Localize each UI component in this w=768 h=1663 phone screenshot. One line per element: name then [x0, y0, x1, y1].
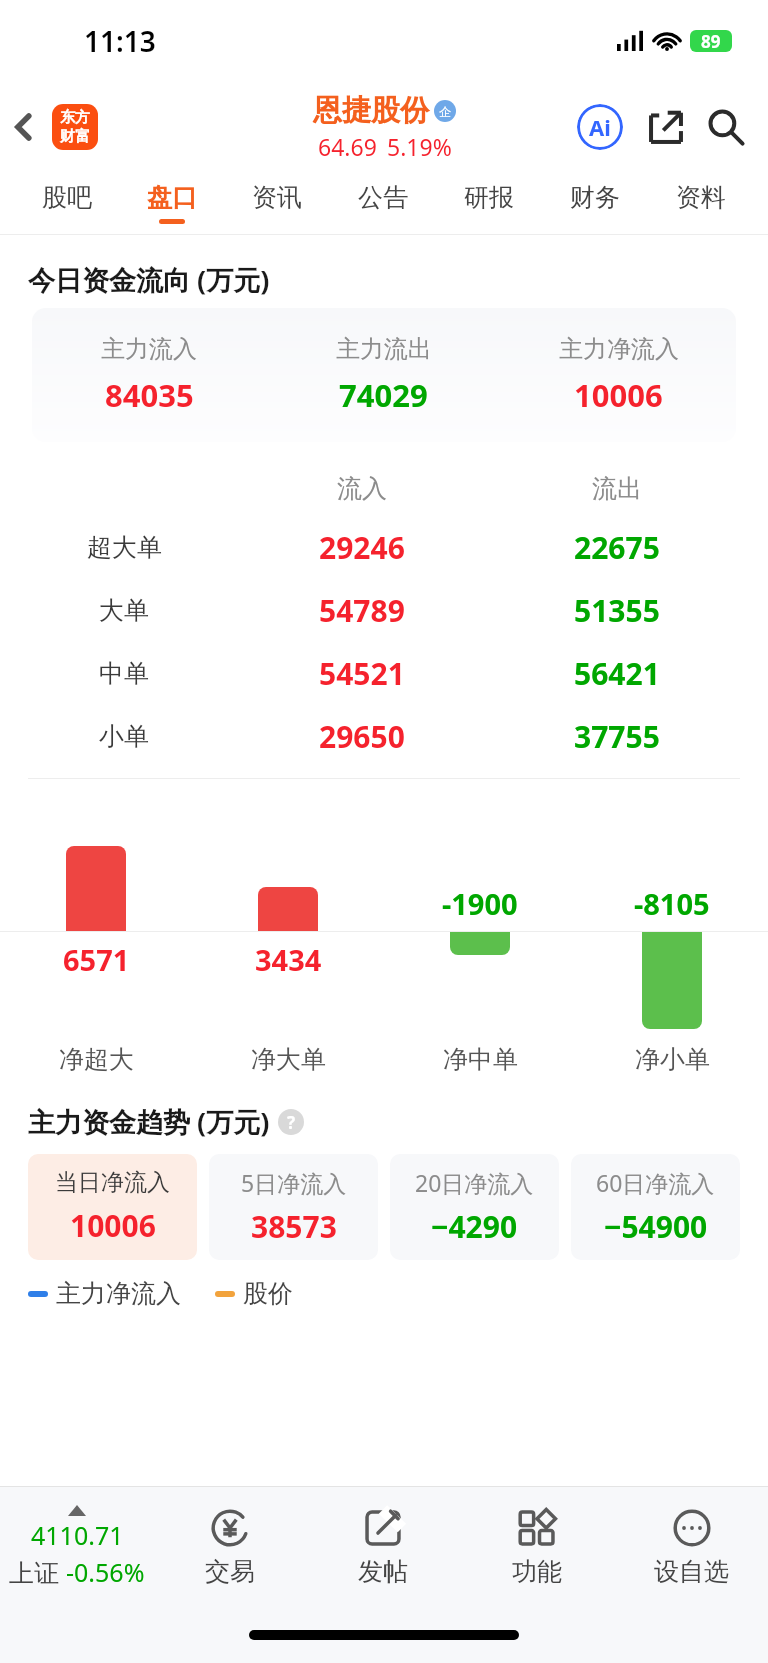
staticText: 净超大 — [59, 1044, 134, 1075]
staticText: 流出 — [592, 473, 642, 504]
staticText: 5日净流入 — [241, 1167, 347, 1198]
button[interactable]: Share — [638, 99, 694, 155]
button[interactable]: 交易 — [153, 1487, 306, 1607]
staticText: 主力流入 — [101, 334, 197, 364]
staticText: 设自选 — [654, 1556, 729, 1587]
staticText: −54900 — [604, 1206, 708, 1247]
staticText: −4290 — [431, 1206, 518, 1247]
button[interactable]: 净中单 — [384, 1029, 576, 1089]
staticText: ? — [287, 1111, 296, 1134]
staticText: 今日资金流向 (万元) — [28, 261, 270, 298]
staticText: 超大单 — [87, 532, 162, 563]
button[interactable]: 5日净流入 — [209, 1154, 378, 1260]
button[interactable]: 净小单 — [576, 1029, 768, 1089]
button[interactable]: 60日净流入 — [571, 1154, 740, 1260]
staticText: 财务 — [570, 182, 620, 213]
button[interactable]: East Money — [52, 104, 98, 150]
button[interactable]: 20日净流入 — [390, 1154, 559, 1260]
staticText: 净中单 — [443, 1044, 518, 1075]
staticText: 5.19% — [387, 131, 452, 162]
button[interactable]: 股吧 — [14, 172, 119, 234]
staticText: -8105 — [634, 884, 710, 923]
staticText: 51355 — [574, 590, 660, 631]
staticText: 29650 — [319, 716, 405, 757]
button[interactable]: 财务 — [542, 172, 648, 234]
staticText: 公告 — [358, 182, 408, 213]
staticText: 38573 — [251, 1206, 337, 1247]
staticText: 功能 — [512, 1556, 562, 1587]
button[interactable]: 功能 — [460, 1487, 614, 1607]
button[interactable]: 当日净流入 — [28, 1154, 197, 1260]
staticText: 20日净流入 — [415, 1167, 534, 1198]
staticText: 10006 — [574, 374, 663, 416]
button[interactable]: 设自选 — [614, 1487, 768, 1607]
staticText: 84035 — [105, 374, 194, 416]
staticText: 研报 — [464, 182, 514, 213]
button[interactable]: 主力流入 — [32, 308, 736, 442]
staticText: 财富 — [60, 127, 90, 146]
button[interactable]: Search — [698, 99, 754, 155]
staticText: 净小单 — [635, 1044, 710, 1075]
button[interactable]: 资讯 — [224, 172, 330, 234]
staticText: -0.56% — [66, 1555, 145, 1589]
staticText: 东方 — [60, 108, 90, 127]
staticText: 60日净流入 — [596, 1167, 715, 1198]
staticText: 74029 — [339, 374, 428, 416]
button[interactable]: 净大单 — [192, 1029, 384, 1089]
staticText: 上证 — [9, 1555, 66, 1589]
staticText: 37755 — [574, 716, 660, 757]
staticText: 当日净流入 — [55, 1168, 170, 1197]
staticText: 主力净流入 — [56, 1278, 181, 1309]
staticText: 11:13 — [84, 22, 156, 60]
button[interactable]: AI assistant — [572, 99, 628, 155]
staticText: 盘口 — [147, 182, 197, 213]
staticText: 4110.71 — [31, 1518, 124, 1552]
staticText: Ai — [589, 112, 611, 142]
button[interactable]: Back — [0, 103, 48, 151]
staticText: 22675 — [574, 527, 660, 568]
staticText: 主力资金趋势 (万元) — [28, 1103, 270, 1140]
staticText: 企 — [439, 104, 451, 119]
staticText: 主力流出 — [336, 334, 432, 364]
staticText: 大单 — [99, 595, 149, 626]
button[interactable]: 公告 — [330, 172, 436, 234]
staticText: 56421 — [574, 653, 660, 694]
button[interactable]: 小单 — [0, 705, 768, 768]
staticText: 恩捷股份 — [313, 92, 429, 129]
staticText: 3434 — [255, 940, 322, 979]
staticText: 资料 — [676, 182, 726, 213]
button[interactable]: 大单 — [0, 579, 768, 642]
staticText: 股吧 — [42, 182, 92, 213]
staticText: 资讯 — [252, 182, 302, 213]
staticText: 交易 — [205, 1556, 255, 1587]
button[interactable]: 盘口 — [119, 172, 224, 234]
staticText: 6571 — [63, 940, 130, 979]
staticText: 流入 — [337, 473, 387, 504]
staticText: 股价 — [243, 1278, 293, 1309]
button[interactable]: 资料 — [648, 172, 754, 234]
staticText: 主力净流入 — [559, 334, 679, 364]
button[interactable]: 中单 — [0, 642, 768, 705]
staticText: 54789 — [319, 590, 405, 631]
staticText: 64.69 — [318, 131, 377, 162]
button[interactable]: 4110.71 — [0, 1487, 153, 1607]
staticText: 净大单 — [251, 1044, 326, 1075]
button[interactable]: 净超大 — [0, 1029, 192, 1089]
staticText: 中单 — [99, 658, 149, 689]
button[interactable]: Help — [278, 1109, 304, 1135]
staticText: 89 — [701, 30, 721, 52]
button[interactable]: 发帖 — [306, 1487, 460, 1607]
staticText: -1900 — [442, 884, 518, 923]
staticText: 29246 — [319, 527, 405, 568]
staticText: 54521 — [319, 653, 405, 694]
button[interactable]: 超大单 — [0, 516, 768, 579]
staticText: 发帖 — [358, 1556, 408, 1587]
button[interactable]: 研报 — [436, 172, 542, 234]
staticText: 10006 — [70, 1205, 156, 1246]
staticText: 小单 — [99, 721, 149, 752]
